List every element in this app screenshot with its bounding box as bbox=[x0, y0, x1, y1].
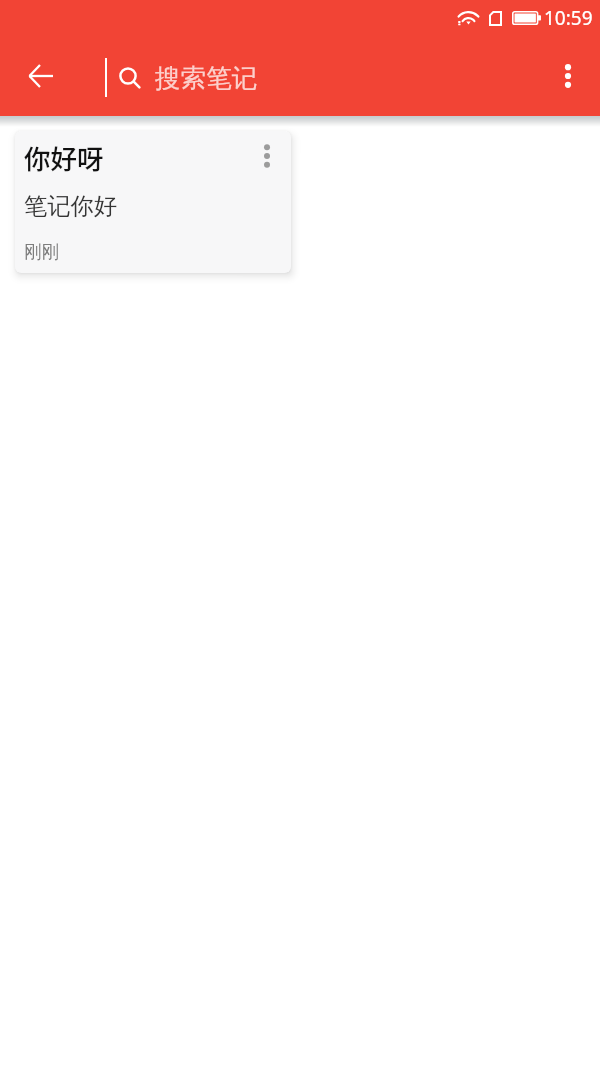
staticText: 搜索笔记 bbox=[155, 62, 258, 94]
button[interactable]: Back bbox=[17, 52, 65, 100]
staticText: 笔记你好 bbox=[24, 192, 118, 221]
staticText: 10:59 bbox=[544, 5, 593, 31]
staticText: 刚刚 bbox=[24, 241, 59, 263]
staticText: 你好呀 bbox=[24, 138, 104, 176]
button[interactable]: Note options bbox=[244, 133, 290, 179]
button[interactable]: More options bbox=[544, 52, 592, 100]
button[interactable]: 搜索笔记 bbox=[113, 40, 513, 112]
button[interactable]: 你好呀 bbox=[15, 131, 291, 273]
